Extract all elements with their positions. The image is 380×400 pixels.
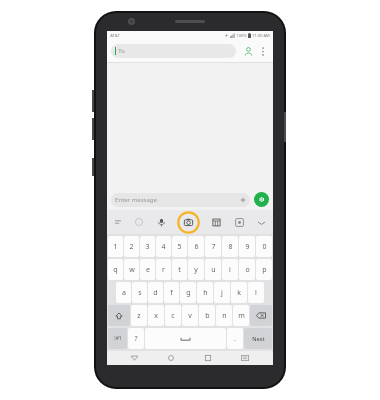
button[interactable]: q [108, 259, 123, 280]
staticText: 0 [262, 242, 267, 252]
button[interactable]: Add recipient from contacts [241, 44, 255, 58]
staticText: 6 [194, 242, 199, 252]
button[interactable]: k [231, 282, 247, 303]
button[interactable]: 5 [172, 236, 187, 257]
button[interactable]: 8 [222, 236, 238, 257]
button[interactable]: Gallery [209, 215, 223, 229]
staticText: . [234, 334, 236, 344]
staticText: 2 [129, 242, 134, 252]
staticText: b [205, 311, 210, 321]
button[interactable]: b [199, 305, 215, 326]
button[interactable]: i [222, 259, 238, 280]
button[interactable]: 2 [124, 236, 139, 257]
staticText: q [113, 265, 118, 275]
button[interactable]: a [116, 282, 131, 303]
staticText: s [138, 288, 142, 298]
button[interactable]: To [111, 44, 236, 58]
button[interactable]: ? [128, 328, 144, 349]
button[interactable]: c [165, 305, 181, 326]
button[interactable]: y [188, 259, 204, 280]
staticText: t [178, 265, 181, 275]
button[interactable]: t [172, 259, 187, 280]
staticText: Next [252, 335, 265, 342]
staticText: m [238, 311, 245, 321]
staticText: v [188, 311, 192, 321]
button[interactable]: f [164, 282, 179, 303]
staticText: e [146, 265, 150, 275]
staticText: To [118, 47, 125, 55]
staticText: p [262, 265, 267, 275]
button[interactable]: j [214, 282, 230, 303]
button[interactable]: 7 [205, 236, 221, 257]
staticText: k [237, 288, 241, 298]
button[interactable]: !#1 [108, 328, 127, 349]
staticText: 100% [236, 33, 247, 38]
button[interactable]: v [182, 305, 198, 326]
button[interactable]: d [148, 282, 163, 303]
button[interactable]: 0 [256, 236, 272, 257]
staticText: x [154, 311, 158, 321]
staticText: w [129, 265, 135, 275]
button[interactable]: 6 [188, 236, 204, 257]
staticText: y [194, 265, 198, 275]
button[interactable]: 3 [140, 236, 155, 257]
button[interactable]: Send message [254, 192, 269, 207]
button[interactable]: s [132, 282, 147, 303]
staticText: g [186, 288, 191, 298]
button[interactable]: Next [244, 328, 272, 349]
button[interactable]: m [233, 305, 249, 326]
button[interactable]: 4 [156, 236, 171, 257]
button[interactable]: Voice input [154, 215, 168, 229]
button[interactable]: Camera [176, 210, 200, 234]
staticText: f [170, 288, 173, 298]
staticText: r [162, 265, 165, 275]
button[interactable]: u [205, 259, 221, 280]
staticText: n [222, 311, 227, 321]
button[interactable]: . [227, 328, 243, 349]
button[interactable]: 1 [108, 236, 123, 257]
button[interactable]: Enter message [111, 193, 250, 207]
staticText: 9 [245, 242, 250, 252]
button[interactable]: r [156, 259, 171, 280]
button[interactable]: Emoji [132, 215, 146, 229]
staticText: j [221, 288, 223, 298]
button[interactable]: Hide keyboard [238, 351, 252, 365]
staticText: Enter message [115, 196, 157, 204]
button[interactable]: Collapse [255, 216, 268, 229]
button[interactable]: More options [257, 45, 269, 57]
button[interactable]: g [180, 282, 196, 303]
staticText: 5 [177, 242, 182, 252]
button[interactable]: p [256, 259, 272, 280]
staticText: 4 [161, 242, 166, 252]
staticText: 11:00 AM [252, 33, 270, 38]
staticText: i [229, 265, 231, 275]
staticText: d [153, 288, 158, 298]
button[interactable]: Space [145, 328, 226, 349]
button[interactable]: z [131, 305, 147, 326]
button[interactable]: n [216, 305, 232, 326]
button[interactable]: o [239, 259, 255, 280]
staticText: u [211, 265, 216, 275]
staticText: 7 [211, 242, 216, 252]
staticText: h [203, 288, 208, 298]
button[interactable]: Stickers [232, 215, 246, 229]
button[interactable]: 9 [239, 236, 255, 257]
staticText: a [122, 288, 126, 298]
button[interactable]: e [140, 259, 155, 280]
button[interactable]: Home [164, 351, 178, 365]
staticText: 1 [113, 242, 118, 252]
button[interactable]: x [148, 305, 164, 326]
staticText: !#1 [114, 335, 122, 342]
button[interactable]: Shift [108, 305, 130, 326]
button[interactable]: Expand toolbar [112, 216, 124, 228]
button[interactable]: h [197, 282, 213, 303]
staticText: ? [134, 334, 138, 344]
staticText: c [171, 311, 175, 321]
button[interactable]: l [248, 282, 264, 303]
button[interactable]: Recent apps [201, 351, 215, 365]
button[interactable]: Back [127, 351, 141, 365]
staticText: l [255, 288, 257, 298]
staticText: 8 [228, 242, 233, 252]
button[interactable]: Backspace [250, 305, 272, 326]
button[interactable]: w [124, 259, 139, 280]
